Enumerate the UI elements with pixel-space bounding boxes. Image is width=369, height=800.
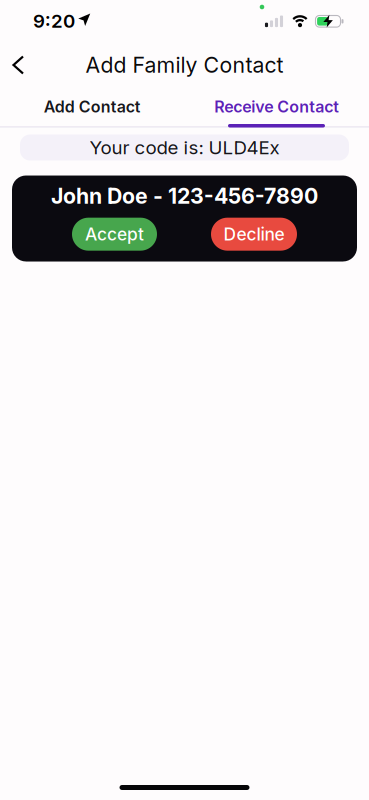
staticText: Your code is: ULD4Ex <box>89 136 279 158</box>
staticText: Accept <box>85 224 144 244</box>
button[interactable]: Add Contact <box>0 86 184 127</box>
staticText: Add Family Contact <box>85 52 283 78</box>
button[interactable]: Receive Contact <box>184 86 369 127</box>
staticText: Receive Contact <box>214 97 339 116</box>
button[interactable]: Accept <box>72 218 157 251</box>
staticText: Add Contact <box>44 97 141 116</box>
staticText: 9:20 <box>33 10 75 32</box>
button[interactable]: Back <box>0 48 24 81</box>
button[interactable]: Decline <box>211 218 297 251</box>
staticText: John Doe - 123-456-7890 <box>51 183 318 209</box>
staticText: Decline <box>223 224 284 244</box>
